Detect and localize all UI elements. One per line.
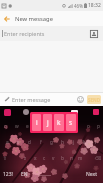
button[interactable]: s [66,114,76,131]
staticText: k [83,139,86,145]
staticText: c [43,155,46,161]
staticText: SEND [88,97,100,103]
button[interactable]: t [43,118,53,134]
button[interactable]: y [53,118,63,134]
staticText: n [70,155,73,161]
button[interactable]: j [43,114,52,131]
button[interactable]: Keyboard theme [4,109,11,116]
staticText: j [47,118,49,127]
staticText: w [15,123,19,129]
staticText: s [17,139,20,145]
button[interactable]: x [30,150,40,166]
button[interactable]: Back [0,12,13,25]
button[interactable]: b [58,150,67,166]
staticText: i [77,123,79,129]
staticText: h [61,139,64,145]
button[interactable]: n [67,150,76,166]
staticText: y [57,123,60,129]
button[interactable]: i [32,114,41,131]
button[interactable]: ⇧ [0,150,10,166]
button[interactable]: SEND [87,95,101,104]
button[interactable]: w [11,118,22,134]
staticText: 123! [3,171,13,178]
button[interactable]: l [90,134,101,150]
staticText: x [34,155,37,161]
staticText: m [78,155,83,161]
staticText: e [26,123,29,129]
staticText: ⇧ [3,156,7,161]
staticText: 18:32 [88,2,101,9]
button[interactable]: Space [38,171,51,179]
staticText: q [4,123,7,129]
staticText: v [52,155,55,161]
button[interactable]: q [0,118,11,134]
button[interactable]: Contacts [88,28,100,40]
button[interactable]: a [2,134,13,150]
staticText: k [57,118,61,127]
button[interactable]: e [22,118,33,134]
button[interactable] [85,150,94,166]
button[interactable]: Backspace [93,109,99,115]
button[interactable]: j [68,134,79,150]
button[interactable]: m [76,150,85,166]
button[interactable]: Next [86,171,97,178]
button[interactable]: u [63,118,73,134]
button[interactable]: i [73,118,83,134]
button[interactable]: o [83,118,93,134]
button[interactable]: ⌫ [94,150,103,166]
button[interactable]: Emoji [75,94,86,105]
staticText: s [69,118,73,127]
staticText: j [73,139,75,145]
button[interactable]: Attach [2,94,12,104]
staticText: Enter recipients [4,30,45,37]
button[interactable]: 123! [3,171,13,178]
staticText: u [67,123,70,129]
staticText: z [24,155,27,161]
staticText: o [87,123,90,129]
button[interactable] [10,150,20,166]
button[interactable]: k [79,134,90,150]
staticText: p [97,123,100,129]
staticText: l [95,139,97,145]
button[interactable]: k [54,114,64,131]
staticText: r [37,123,39,129]
button[interactable]: Settings [23,109,29,115]
staticText: EN [21,171,28,178]
staticText: b [61,155,64,161]
staticText: t [47,123,49,129]
staticText: f [40,139,42,145]
button[interactable]: p [93,118,103,134]
staticText: Enter message [12,96,51,103]
button[interactable]: g [46,134,57,150]
button[interactable]: c [40,150,49,166]
button[interactable]: f [35,134,46,150]
staticText: Enable [46,112,60,118]
staticText: a [6,139,9,145]
button[interactable]: r [33,118,43,134]
button[interactable]: d [24,134,35,150]
staticText: ⌫ [95,156,102,161]
button[interactable]: h [57,134,68,150]
button[interactable]: v [49,150,58,166]
staticText: g [50,139,53,145]
button[interactable]: EN [21,171,28,178]
staticText: d [28,139,31,145]
staticText: i [36,118,38,127]
button[interactable]: s [13,134,24,150]
button[interactable]: z [20,150,30,166]
staticText: 46% [74,3,83,9]
staticText: New message [15,15,53,23]
staticText: Next [86,171,97,178]
